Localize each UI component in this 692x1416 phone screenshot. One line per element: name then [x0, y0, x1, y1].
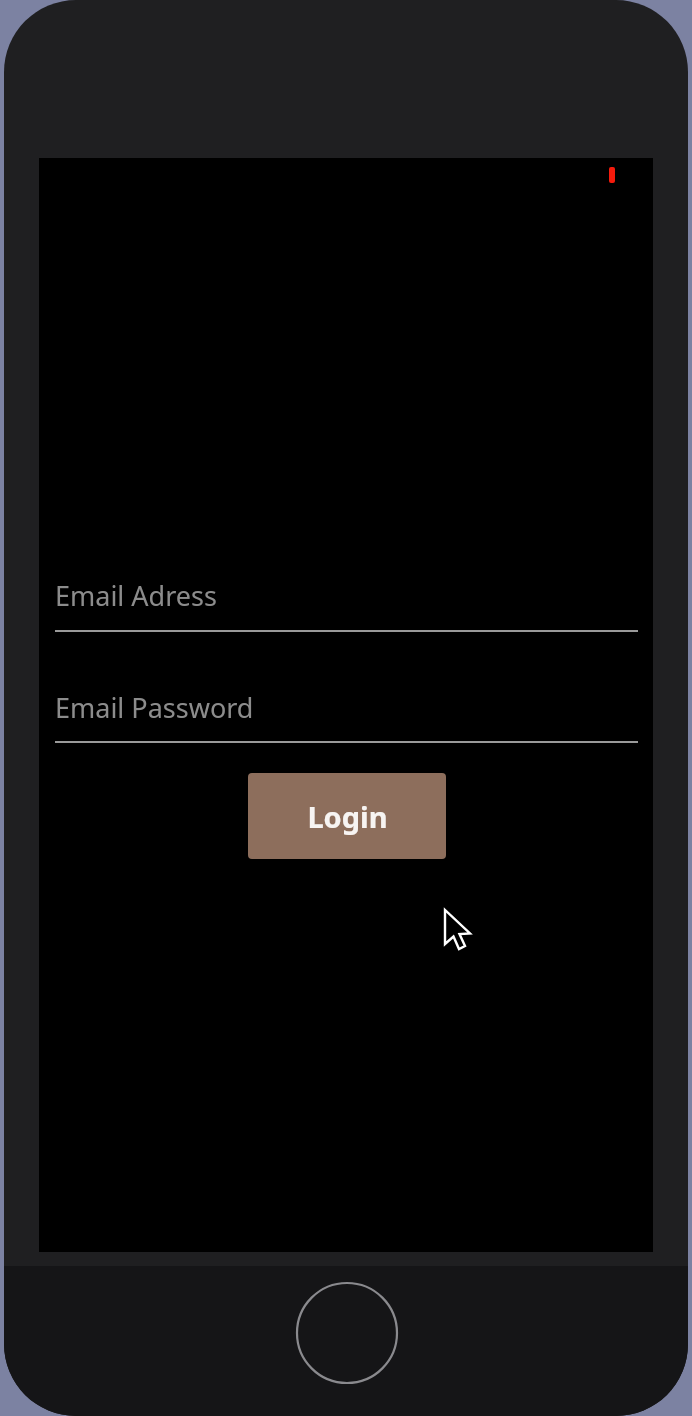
staticText: Email Password: [55, 689, 254, 726]
other: Recording indicator: [609, 167, 615, 183]
button[interactable]: Home: [291, 1277, 403, 1389]
button[interactable]: Login: [248, 773, 446, 859]
staticText: Email Adress: [55, 577, 217, 614]
staticText: Login: [307, 797, 388, 836]
